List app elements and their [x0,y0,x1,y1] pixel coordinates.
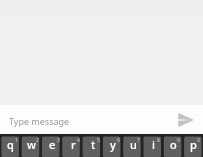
staticText: y [110,137,116,152]
button[interactable]: 6 [103,134,123,157]
staticText: 0 [197,137,200,144]
button[interactable]: 7 [123,134,143,157]
staticText: e [49,137,56,152]
staticText: w [27,137,36,152]
button[interactable]: 5 [83,134,103,157]
button[interactable]: Send [166,105,203,134]
staticText: 8 [157,137,160,144]
button[interactable]: 9 [163,134,183,157]
staticText: 5 [97,137,100,144]
button[interactable]: 3 [42,134,63,157]
staticText: Type message [9,115,70,127]
staticText: q [7,137,14,152]
staticText: t [91,137,96,152]
staticText: 7 [137,137,140,144]
staticText: 1 [15,137,18,144]
staticText: o [170,137,177,152]
staticText: r [71,137,76,152]
staticText: 6 [117,137,120,144]
staticText: 2 [36,137,39,144]
staticText: 9 [177,137,180,144]
button[interactable]: 2 [21,134,42,157]
staticText: u [130,137,137,152]
button[interactable]: 1 [0,134,21,157]
button[interactable]: 4 [63,134,83,157]
button[interactable]: 0 [183,134,203,157]
staticText: p [190,137,197,152]
staticText: i [152,137,155,152]
button[interactable]: 8 [143,134,163,157]
staticText: 3 [57,137,60,144]
staticText: 4 [77,137,80,144]
